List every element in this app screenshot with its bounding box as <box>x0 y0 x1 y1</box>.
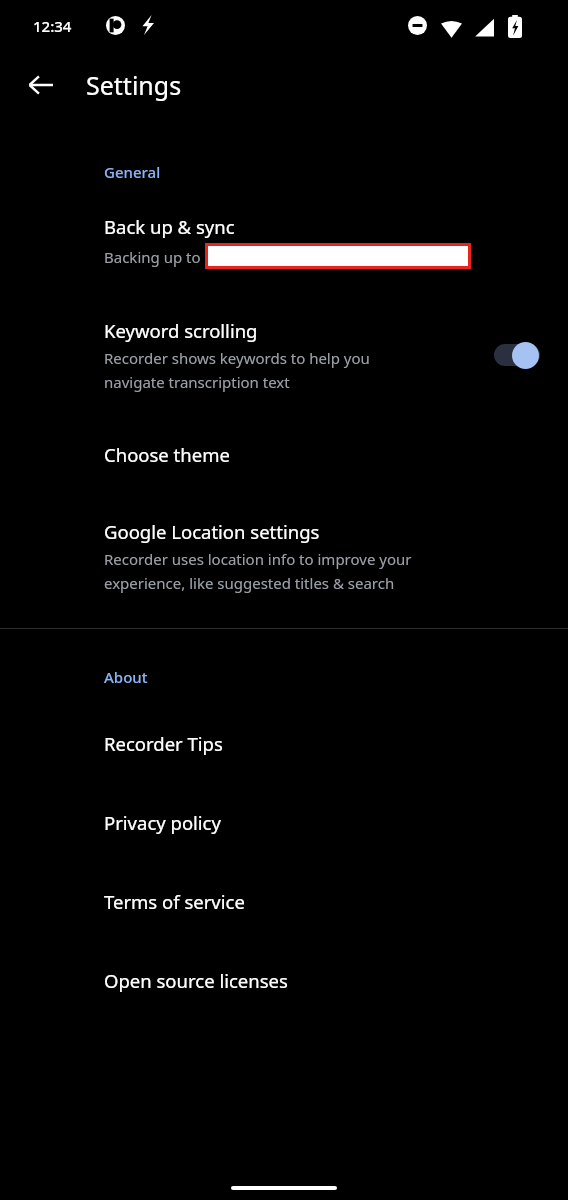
staticText: Choose theme <box>104 442 230 467</box>
staticText: Settings <box>86 68 182 102</box>
button[interactable]: Choose theme <box>0 440 568 469</box>
staticText: experience, like suggested titles & sear… <box>104 573 395 593</box>
staticText: About <box>104 667 148 687</box>
button[interactable]: Privacy policy <box>0 808 568 837</box>
button[interactable]: Back <box>17 61 65 109</box>
button[interactable]: Open source licenses <box>0 966 568 995</box>
button[interactable]: Keyword scrolling <box>0 318 568 392</box>
staticText: Backing up to <box>104 247 205 267</box>
button[interactable]: Back up & sync <box>0 212 568 272</box>
staticText: Google Location settings <box>104 519 320 544</box>
staticText: navigate transcription text <box>104 372 290 392</box>
staticText: Keyword scrolling <box>104 318 258 343</box>
staticText: Back up & sync <box>104 214 235 239</box>
staticText: General <box>104 162 161 182</box>
button[interactable]: Keyword scrolling toggle <box>492 339 544 371</box>
button[interactable]: Recorder Tips <box>0 729 568 758</box>
staticText: 12:34 <box>33 16 72 36</box>
staticText: Terms of service <box>104 889 245 914</box>
staticText: Recorder uses location info to improve y… <box>104 549 412 569</box>
button[interactable]: Terms of service <box>0 887 568 916</box>
staticText: Privacy policy <box>104 810 221 835</box>
staticText: Recorder shows keywords to help you <box>104 348 370 368</box>
staticText: Recorder Tips <box>104 731 223 756</box>
staticText: Open source licenses <box>104 968 288 993</box>
button[interactable]: Google Location settings <box>0 517 568 595</box>
